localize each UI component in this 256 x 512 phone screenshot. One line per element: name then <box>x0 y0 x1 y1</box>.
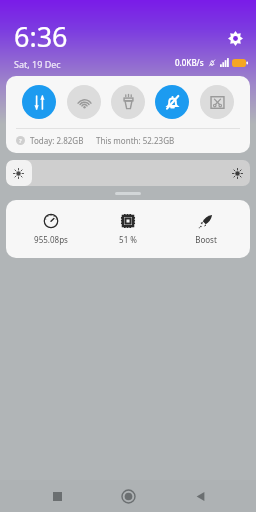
staticText: 6:36 <box>14 18 68 55</box>
button[interactable]: Mobile data <box>22 85 56 119</box>
button[interactable]: CPU usage <box>95 211 161 247</box>
button[interactable]: Network speed <box>18 211 84 247</box>
staticText: Today: 2.82GB <box>30 135 84 146</box>
staticText: 955.08ps <box>34 234 68 245</box>
button[interactable]: Screenshot <box>200 85 234 119</box>
button[interactable]: ? <box>6 129 250 153</box>
button[interactable]: Recents <box>42 481 72 511</box>
button[interactable]: Flashlight <box>111 85 145 119</box>
staticText: ? <box>19 137 22 145</box>
staticText: This month: 52.23GB <box>96 135 175 146</box>
staticText: 51 % <box>119 234 137 245</box>
button[interactable]: Silent mode <box>155 85 189 119</box>
button[interactable]: Boost <box>173 211 239 247</box>
button[interactable]: Brightness <box>6 160 250 186</box>
button[interactable]: Settings <box>224 27 246 49</box>
staticText: Boost <box>195 234 217 245</box>
staticText: 0.0KB/s <box>175 57 204 68</box>
button[interactable]: Back <box>185 481 215 511</box>
staticText: Sat, 19 Dec <box>14 58 61 70</box>
button[interactable]: Wi-Fi <box>67 85 101 119</box>
button[interactable]: Home <box>113 481 143 511</box>
